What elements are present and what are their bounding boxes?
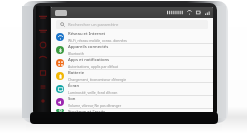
staticText: Autorisations, applis par défaut — [68, 64, 118, 69]
staticText: Apps et notifications — [68, 57, 110, 63]
button[interactable]: Hard key 7 — [37, 94, 49, 107]
staticText: Bluetooth — [68, 51, 84, 56]
staticText: Batterie — [68, 70, 85, 76]
staticText: Réseau et Internet — [68, 31, 106, 37]
button[interactable]: Hard key 1 — [37, 10, 49, 23]
button[interactable]: Rechercher un paramètre — [56, 20, 208, 29]
button[interactable]: Hard key 5 — [37, 66, 49, 79]
button[interactable]: Hard key 6 — [37, 80, 49, 93]
button[interactable]: Écran — [51, 83, 213, 95]
staticText: Son — [68, 96, 76, 102]
staticText: Rechercher un paramètre — [68, 22, 119, 28]
staticText: Wi-Fi, réseau mobile, conso. données — [68, 38, 127, 43]
button[interactable]: Hard key 2 — [37, 24, 49, 37]
button[interactable]: Apps et notifications — [51, 57, 213, 69]
button[interactable]: Batterie — [51, 70, 213, 82]
button[interactable]: Stockage et l'accès — [51, 109, 213, 112]
staticText: Appareils connectés — [68, 44, 109, 50]
staticText: Chargement, économiseur d'énergie — [68, 77, 127, 82]
button[interactable]: Appareils connectés — [51, 44, 213, 56]
button[interactable]: Hard key 3 — [37, 38, 49, 51]
button[interactable]: Hard key 4 — [37, 52, 49, 65]
button[interactable]: Home — [55, 10, 67, 16]
staticText: Luminosité, veille, fond d'écran — [68, 90, 118, 95]
staticText: Écran — [68, 83, 80, 89]
staticText: Stockage et l'accès — [68, 109, 106, 112]
staticText: Volume, vibreur, Ne pas déranger — [68, 103, 122, 108]
button[interactable]: Réseau et Internet — [51, 31, 213, 43]
button[interactable]: Son — [51, 96, 213, 108]
